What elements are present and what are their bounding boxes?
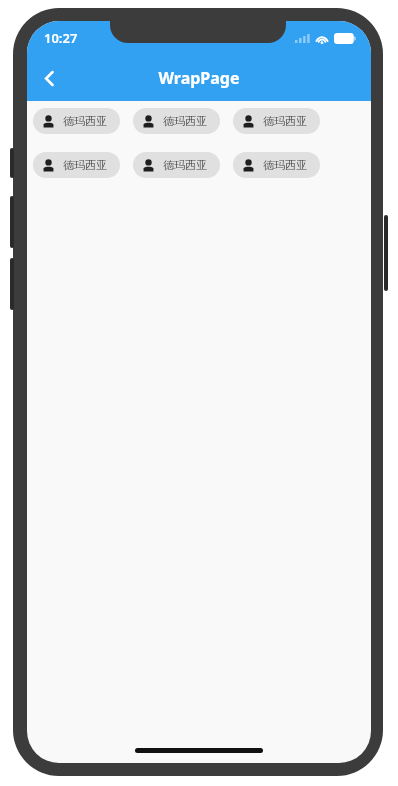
staticText: 德玛西亚 [263, 114, 307, 128]
staticText: 10:27 [44, 29, 78, 47]
button[interactable]: 德玛西亚 [33, 108, 120, 134]
button[interactable]: 德玛西亚 [133, 108, 220, 134]
staticText: 德玛西亚 [163, 114, 207, 128]
button[interactable]: 德玛西亚 [133, 152, 220, 178]
button[interactable]: 德玛西亚 [233, 152, 320, 178]
button[interactable]: 德玛西亚 [33, 152, 120, 178]
staticText: WrapPage [158, 67, 240, 89]
button[interactable]: Back [27, 56, 71, 100]
staticText: 德玛西亚 [163, 158, 207, 172]
staticText: 德玛西亚 [63, 158, 107, 172]
button[interactable]: 德玛西亚 [233, 108, 320, 134]
staticText: 德玛西亚 [263, 158, 307, 172]
staticText: 德玛西亚 [63, 114, 107, 128]
